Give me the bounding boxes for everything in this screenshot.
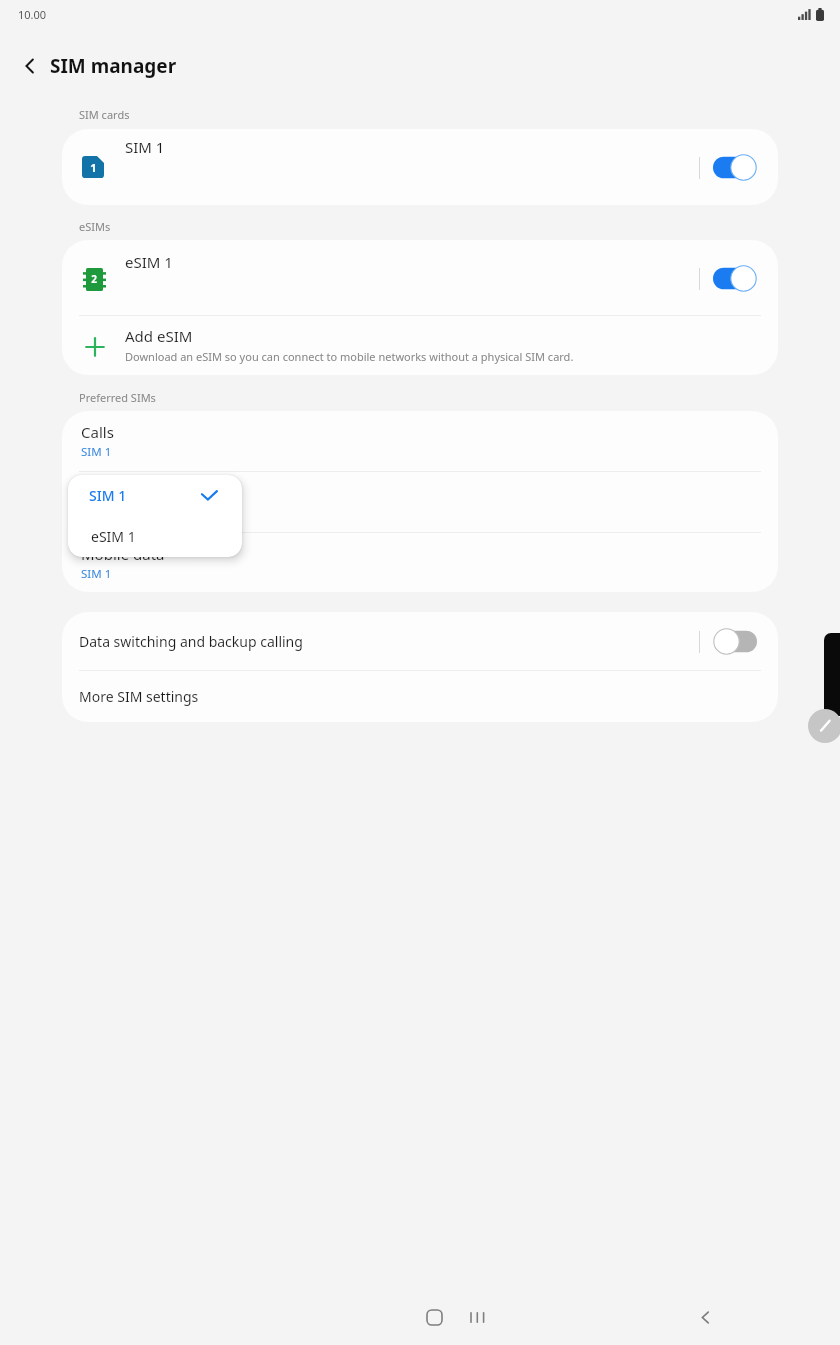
- button[interactable]: SIM 1: [68, 475, 242, 516]
- staticText: 2: [91, 272, 97, 286]
- staticText: Calls: [81, 422, 114, 442]
- staticText: More SIM settings: [79, 687, 199, 706]
- staticText: Download an eSIM so you can connect to m…: [125, 349, 574, 364]
- button[interactable]: Data switching and backup calling: [62, 612, 778, 670]
- staticText: SIM 1: [89, 486, 127, 505]
- staticText: Data switching and backup calling: [79, 632, 303, 651]
- staticText: Preferred SIMs: [79, 390, 156, 405]
- button[interactable]: 2: [62, 240, 778, 315]
- button[interactable]: Switch on: [713, 154, 757, 181]
- button[interactable]: Add eSIM: [62, 316, 778, 375]
- staticText: eSIM 1: [91, 527, 136, 546]
- staticText: SIM manager: [50, 53, 177, 79]
- button[interactable]: Back: [12, 48, 48, 84]
- staticText: SIM 1: [81, 566, 112, 582]
- staticText: eSIM 1: [125, 252, 173, 272]
- button[interactable]: Recents: [455, 1294, 501, 1340]
- staticText: SIM 1: [125, 137, 165, 157]
- button[interactable]: Back: [682, 1294, 728, 1340]
- button[interactable]: eSIM 1: [68, 516, 242, 557]
- button[interactable]: 1: [62, 129, 778, 205]
- staticText: Mobile data: [81, 544, 165, 564]
- button[interactable]: Mobile data: [62, 533, 778, 592]
- staticText: Text messages: [81, 483, 184, 503]
- staticText: SIM cards: [79, 107, 130, 122]
- button[interactable]: More SIM settings: [62, 671, 778, 722]
- button[interactable]: Switch on: [713, 265, 757, 292]
- button[interactable]: Text messages: [62, 472, 778, 532]
- button[interactable]: Home: [411, 1294, 457, 1340]
- staticText: 10.00: [18, 7, 47, 22]
- staticText: eSIMs: [79, 219, 111, 234]
- staticText: Add eSIM: [125, 326, 193, 346]
- button[interactable]: Edit: [808, 709, 840, 743]
- staticText: 1: [90, 160, 97, 175]
- button[interactable]: Switch off: [713, 628, 757, 655]
- staticText: SIM 1: [81, 444, 112, 460]
- button[interactable]: Edge panel handle: [824, 633, 840, 716]
- button[interactable]: Calls: [62, 411, 778, 471]
